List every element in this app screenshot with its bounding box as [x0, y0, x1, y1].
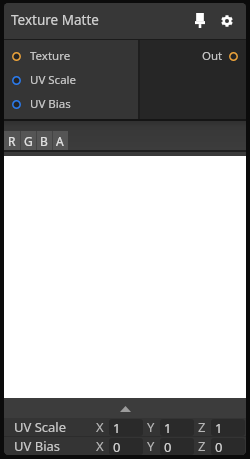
staticText: 1: [215, 419, 223, 436]
staticText: Out: [202, 48, 223, 64]
staticText: A: [56, 133, 64, 149]
button[interactable]: A: [52, 131, 68, 150]
staticText: Z: [198, 437, 206, 455]
staticText: X: [96, 418, 104, 436]
staticText: 0: [164, 438, 172, 455]
staticText: Y: [147, 418, 155, 436]
staticText: Z: [198, 418, 206, 436]
button[interactable]: B: [36, 131, 52, 150]
button[interactable]: 1: [160, 419, 194, 436]
staticText: UV Scale: [14, 418, 67, 436]
staticText: R: [8, 133, 16, 149]
staticText: Texture: [30, 48, 71, 64]
staticText: 1: [164, 419, 172, 436]
button[interactable]: Collapse: [4, 398, 246, 418]
staticText: UV Scale: [30, 72, 77, 88]
staticText: B: [40, 133, 48, 149]
button[interactable]: 1: [211, 419, 245, 436]
button[interactable]: R: [4, 131, 20, 150]
button[interactable]: UV Scale: [4, 68, 138, 92]
button[interactable]: 1: [109, 419, 143, 436]
staticText: UV Bias: [30, 96, 71, 112]
staticText: Y: [147, 437, 155, 455]
button[interactable]: 0: [160, 438, 194, 455]
staticText: 0: [215, 438, 223, 455]
staticText: Texture Matte: [11, 11, 99, 29]
button[interactable]: 0: [109, 438, 143, 455]
staticText: UV Bias: [14, 437, 61, 455]
button[interactable]: G: [20, 131, 36, 150]
button[interactable]: 0: [211, 438, 245, 455]
staticText: 0: [113, 438, 121, 455]
staticText: G: [24, 133, 33, 149]
button[interactable]: Settings: [217, 11, 237, 31]
staticText: 1: [113, 419, 121, 436]
staticText: X: [96, 437, 104, 455]
button[interactable]: Texture: [4, 44, 138, 68]
button[interactable]: Pin: [190, 10, 210, 30]
button[interactable]: UV Bias: [4, 92, 138, 116]
